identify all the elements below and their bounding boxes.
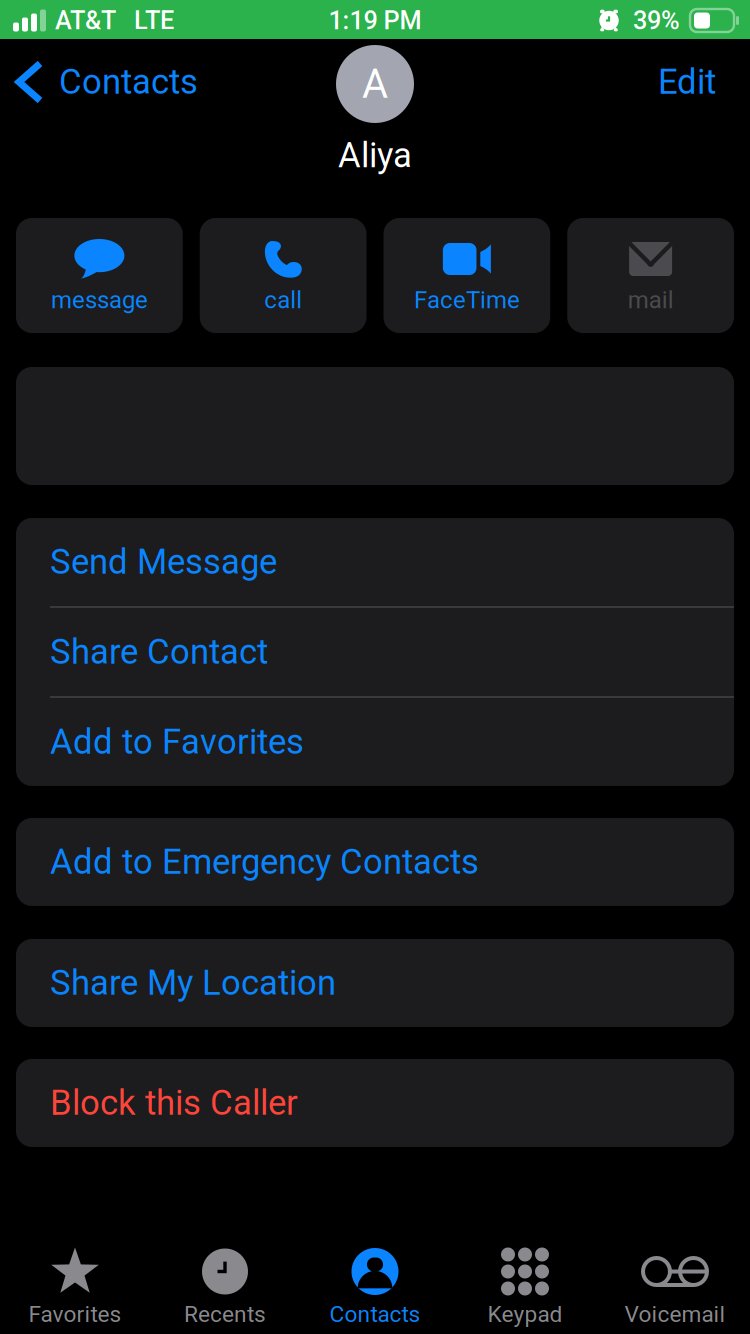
staticText: A: [362, 61, 388, 107]
button[interactable]: Favorites: [0, 1224, 150, 1334]
staticText: Favorites: [28, 1301, 121, 1328]
staticText: Voicemail: [624, 1301, 725, 1328]
button[interactable]: Add to Emergency Contacts: [16, 818, 734, 906]
staticText: Aliya: [338, 135, 412, 176]
button[interactable]: Recents: [150, 1224, 300, 1334]
button[interactable]: mail: [567, 218, 734, 333]
button[interactable]: Share My Location: [16, 939, 734, 1027]
button[interactable]: message: [16, 218, 183, 333]
button[interactable]: Keypad: [450, 1224, 600, 1334]
staticText: Keypad: [487, 1301, 562, 1328]
staticText: message: [51, 286, 148, 314]
button[interactable]: call: [200, 218, 367, 333]
staticText: AT&T: [55, 6, 116, 35]
staticText: Share Contact: [50, 632, 268, 672]
button[interactable]: Contacts: [0, 54, 214, 110]
staticText: FaceTime: [414, 286, 520, 314]
staticText: Block this Caller: [50, 1083, 298, 1123]
button[interactable]: Contacts: [300, 1224, 450, 1334]
button[interactable]: Edit: [634, 54, 750, 110]
button[interactable]: FaceTime: [383, 218, 550, 333]
staticText: Contacts: [59, 62, 198, 102]
staticText: Share My Location: [50, 963, 336, 1003]
staticText: 1:19 PM: [328, 6, 421, 35]
staticText: call: [264, 286, 302, 314]
staticText: mail: [628, 286, 674, 314]
staticText: Edit: [658, 62, 716, 102]
button[interactable]: Send Message: [16, 518, 734, 606]
staticText: Add to Favorites: [50, 722, 304, 762]
button[interactable]: Share Contact: [16, 608, 734, 696]
staticText: Contacts: [329, 1301, 420, 1328]
button[interactable]: Block this Caller: [16, 1059, 734, 1147]
staticText: 39%: [633, 6, 680, 35]
staticText: Recents: [184, 1301, 266, 1328]
staticText: Add to Emergency Contacts: [50, 842, 479, 882]
button[interactable]: Add to Favorites: [16, 698, 734, 786]
staticText: LTE: [134, 6, 174, 35]
staticText: Send Message: [50, 542, 277, 582]
button[interactable]: Voicemail: [600, 1224, 750, 1334]
